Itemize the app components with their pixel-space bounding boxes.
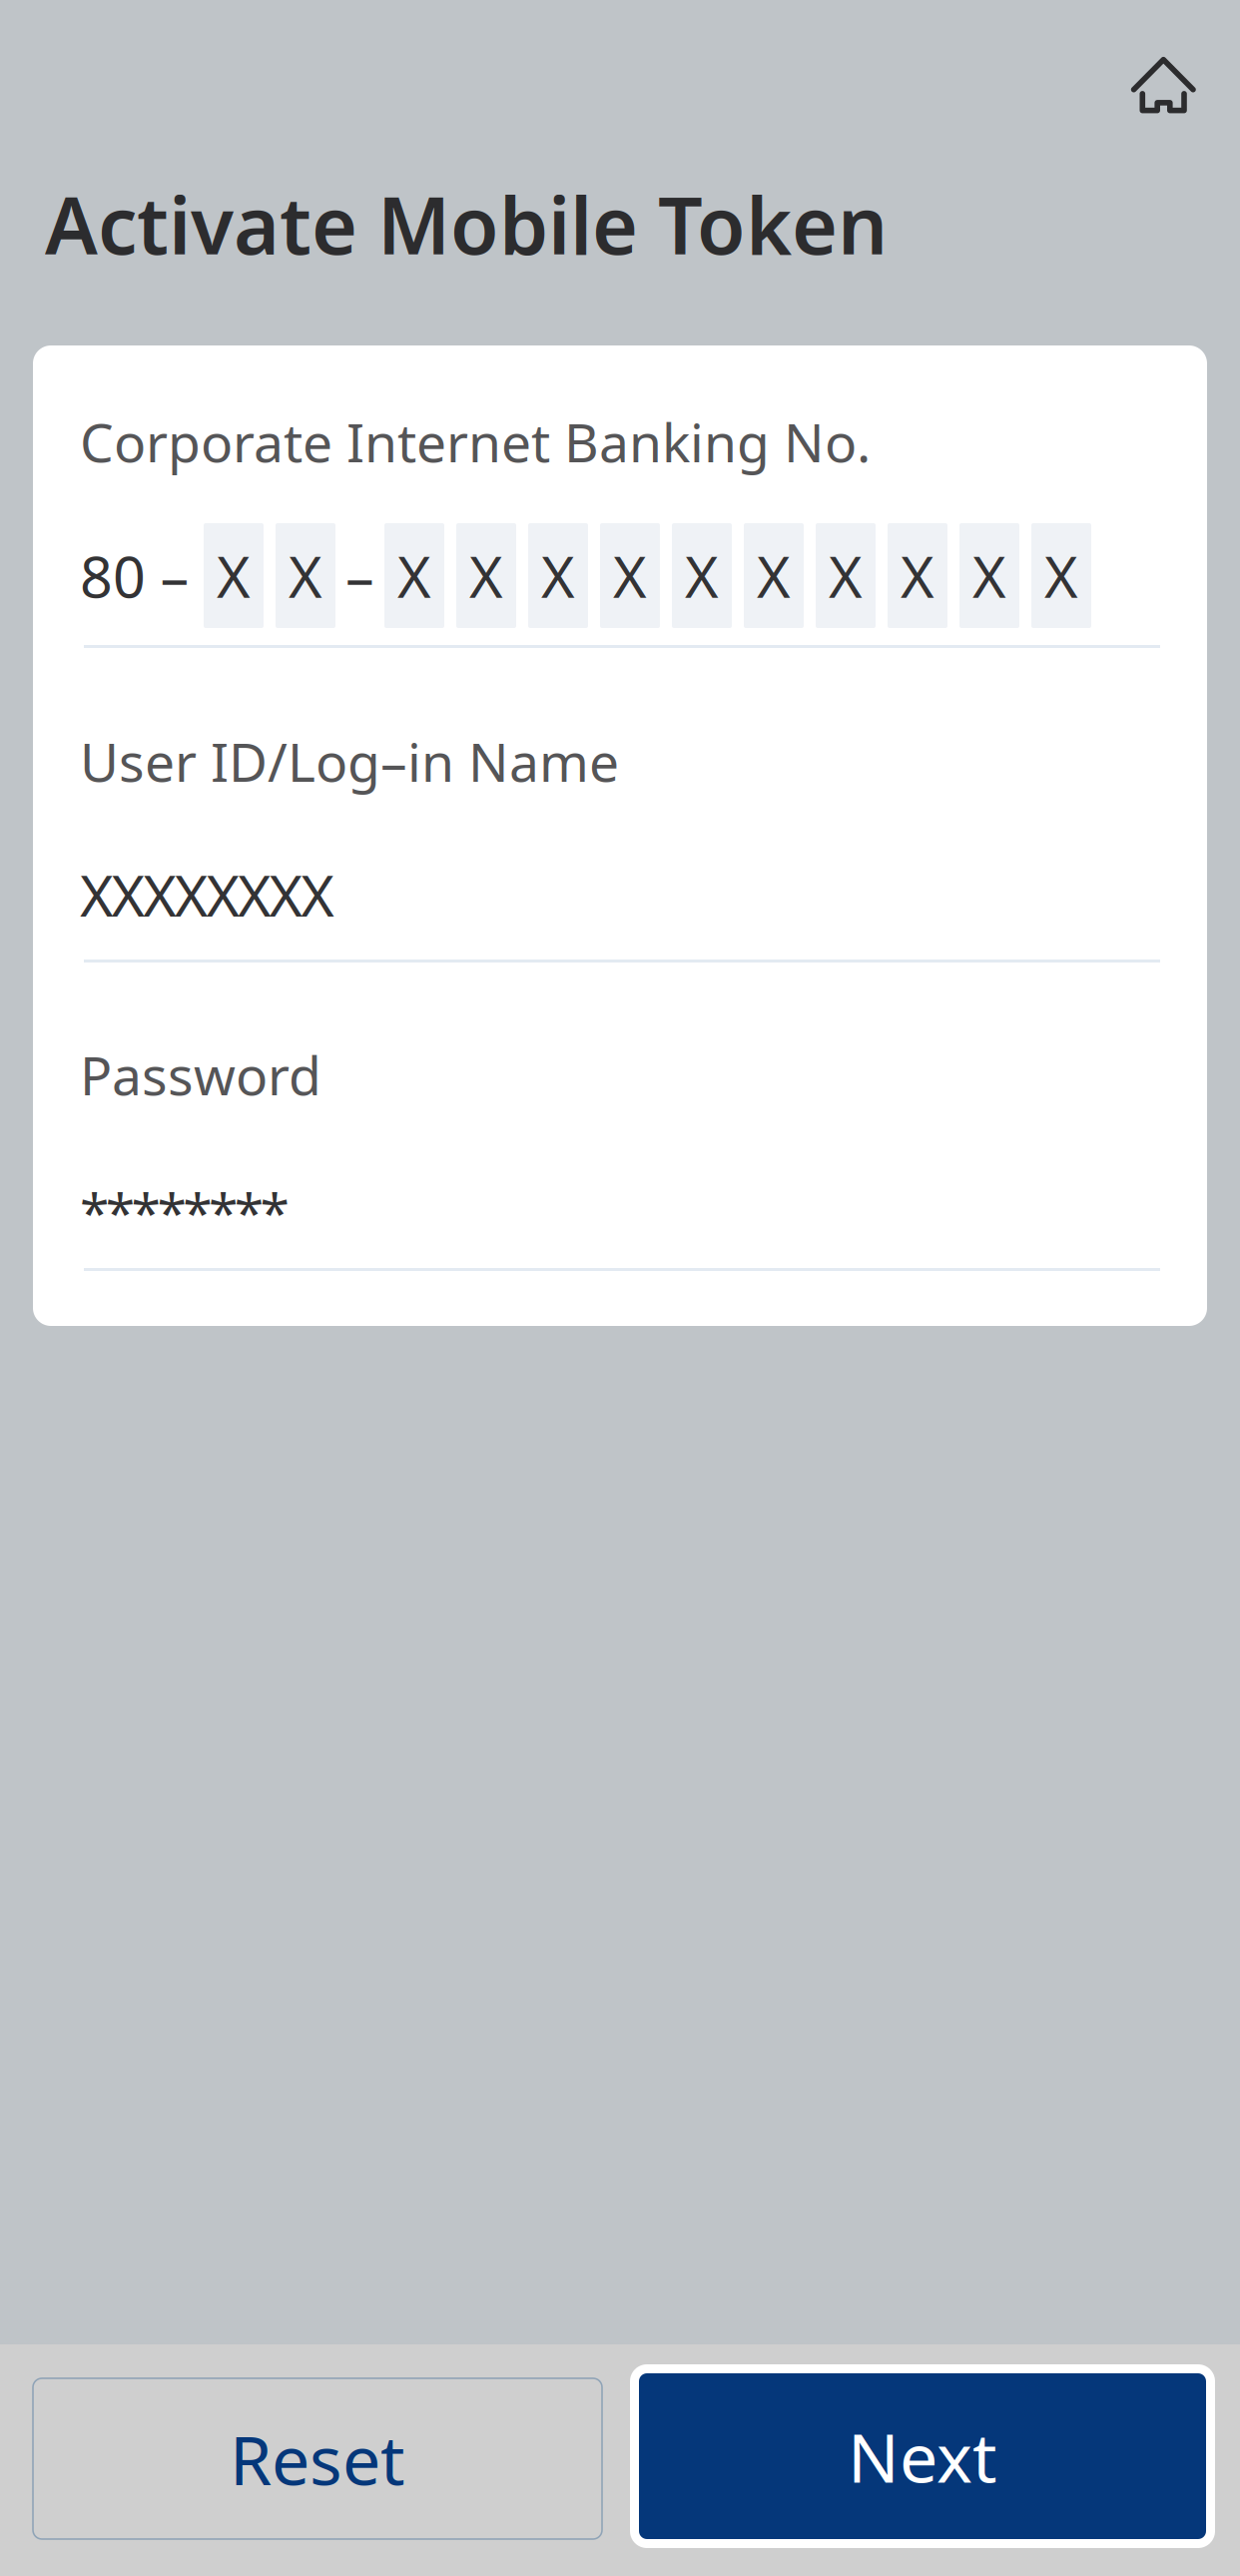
staticText: User ID/Log–in Name xyxy=(80,726,619,797)
staticText: X xyxy=(685,538,719,614)
staticText: Password xyxy=(80,1039,321,1110)
staticText: – xyxy=(345,538,374,614)
staticText: X xyxy=(541,538,575,614)
staticText: X xyxy=(1044,538,1078,614)
staticText: X xyxy=(829,538,863,614)
staticText: X xyxy=(972,538,1006,614)
staticText: X xyxy=(289,538,322,614)
staticText: Corporate Internet Banking No. xyxy=(80,406,871,477)
staticText: X xyxy=(469,538,503,614)
staticText: X xyxy=(757,538,791,614)
staticText: X xyxy=(613,538,647,614)
staticText: X xyxy=(397,538,431,614)
button[interactable]: User ID/Log–in Name xyxy=(80,658,1160,972)
staticText: Next xyxy=(848,2411,997,2501)
staticText: ******** xyxy=(80,1176,289,1247)
button[interactable]: Password xyxy=(80,972,1160,1284)
staticText: – xyxy=(160,538,189,614)
staticText: Activate Mobile Token xyxy=(45,172,888,276)
button[interactable]: Home xyxy=(1109,33,1219,142)
staticText: XXXXXXXX xyxy=(80,857,335,933)
staticText: 80 xyxy=(80,538,146,614)
button[interactable]: Next xyxy=(630,2364,1215,2548)
staticText: X xyxy=(901,538,934,614)
staticText: X xyxy=(217,538,251,614)
staticText: Reset xyxy=(230,2414,405,2504)
button[interactable]: Corporate Internet Banking No. xyxy=(80,345,1160,648)
button[interactable]: Reset xyxy=(33,2378,602,2539)
